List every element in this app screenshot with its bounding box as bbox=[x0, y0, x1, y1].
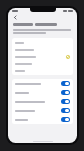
button[interactable] bbox=[12, 88, 73, 97]
button[interactable] bbox=[12, 79, 73, 88]
button[interactable]: Back bbox=[11, 13, 19, 21]
button[interactable] bbox=[12, 53, 73, 60]
button[interactable] bbox=[12, 67, 73, 74]
button[interactable] bbox=[12, 39, 73, 46]
button[interactable] bbox=[12, 115, 73, 124]
button[interactable] bbox=[12, 106, 73, 115]
button[interactable] bbox=[12, 46, 73, 53]
button[interactable] bbox=[12, 60, 73, 67]
button[interactable] bbox=[12, 97, 73, 106]
